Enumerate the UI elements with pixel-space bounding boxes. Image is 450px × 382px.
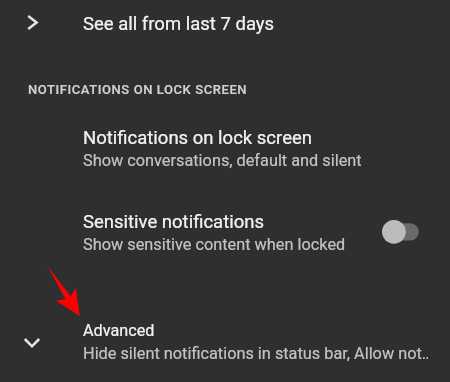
staticText: Hide silent notifications in status bar,… [83,344,428,363]
staticText: Show sensitive content when locked [83,235,346,254]
staticText: See all from last 7 days [83,13,275,35]
staticText: NOTIFICATIONS ON LOCK SCREEN [28,82,248,97]
other: See all from last 7 days [22,14,42,34]
other: Expand advanced settings [22,331,42,351]
button[interactable]: See all from last 7 days [0,0,450,47]
button[interactable]: Sensitive notifications toggle, off [368,208,416,256]
button[interactable]: Sensitive notifications [0,199,450,263]
staticText: Show conversations, default and silent [83,151,362,170]
button[interactable]: Expand advanced settings [0,309,450,373]
staticText: Notifications on lock screen [83,127,312,149]
staticText: Advanced [83,321,155,340]
button[interactable]: Notifications on lock screen [0,115,450,179]
staticText: Sensitive notifications [83,211,265,233]
